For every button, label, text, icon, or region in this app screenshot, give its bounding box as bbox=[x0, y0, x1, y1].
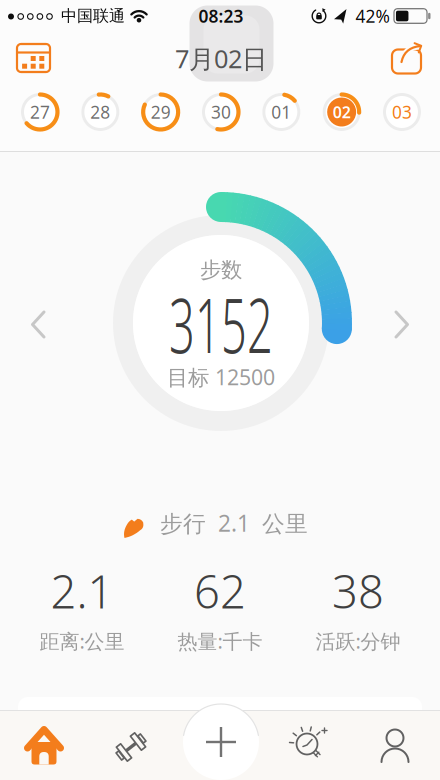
staticText: 步数 bbox=[200, 257, 242, 283]
staticText: 08:23 bbox=[198, 4, 243, 27]
staticText: 28 bbox=[90, 100, 110, 123]
staticText: 03 bbox=[392, 100, 412, 123]
staticText: 距离:公里 bbox=[39, 628, 124, 654]
staticText: 27 bbox=[30, 100, 50, 123]
staticText: 热量:千卡 bbox=[177, 628, 262, 654]
staticText: 中国联通 bbox=[61, 6, 125, 26]
staticText: 62 bbox=[194, 561, 246, 621]
staticText: 29 bbox=[151, 100, 171, 123]
staticText: 7月02日 bbox=[175, 42, 267, 75]
staticText: 步行 2.1 公里 bbox=[160, 508, 308, 538]
staticText: 2.1 bbox=[50, 561, 113, 621]
staticText: 活跃:分钟 bbox=[315, 628, 400, 654]
staticText: 38 bbox=[332, 561, 384, 621]
staticText: 42% bbox=[355, 4, 389, 27]
staticText: 目标 12500 bbox=[167, 363, 275, 391]
staticText: 3152 bbox=[135, 274, 307, 374]
staticText: 02 bbox=[333, 101, 351, 123]
staticText: 01 bbox=[271, 100, 291, 123]
staticText: 30 bbox=[211, 100, 231, 123]
